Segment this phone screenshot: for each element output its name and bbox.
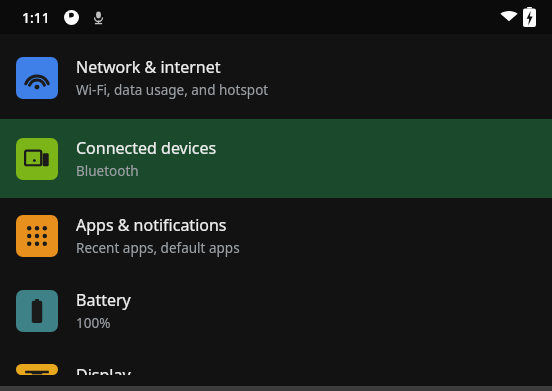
staticText: Network & internet	[76, 56, 221, 78]
staticText: 100%	[76, 314, 111, 332]
staticText: Recent apps, default apps	[76, 239, 240, 257]
button[interactable]: Network & internet	[0, 34, 552, 119]
staticText: Wi-Fi, data usage, and hotspot	[76, 81, 269, 99]
button[interactable]: Display	[0, 348, 552, 391]
staticText: Display	[76, 364, 131, 375]
staticText: Connected devices	[76, 137, 217, 159]
staticText: Apps & notifications	[76, 214, 227, 236]
staticText: Bluetooth	[76, 162, 139, 180]
button[interactable]: Connected devices	[0, 119, 552, 198]
staticText: Battery	[76, 289, 131, 311]
button[interactable]: Apps & notifications	[0, 198, 552, 273]
staticText: 1:11	[22, 8, 50, 27]
button[interactable]: Battery	[0, 273, 552, 348]
